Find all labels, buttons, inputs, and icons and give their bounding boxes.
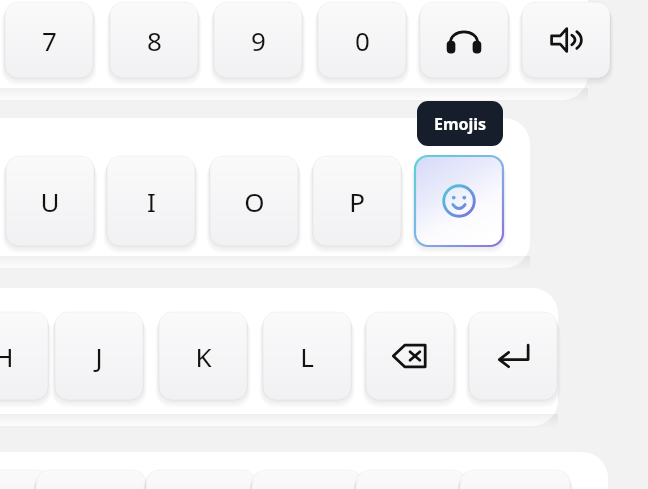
staticText: O: [244, 184, 265, 219]
button[interactable]: I: [107, 156, 195, 246]
button[interactable]: 9: [214, 2, 302, 78]
staticText: 7: [42, 23, 57, 58]
button[interactable]: P: [313, 156, 401, 246]
staticText: H: [0, 339, 14, 374]
button[interactable]: K: [159, 312, 247, 400]
button[interactable]: 8: [110, 2, 198, 78]
staticText: P: [349, 184, 365, 219]
staticText: J: [95, 339, 103, 374]
staticText: 8: [147, 23, 162, 58]
button[interactable]: O: [210, 156, 298, 246]
button[interactable]: H: [0, 312, 48, 400]
button[interactable]: 7: [5, 2, 93, 78]
button[interactable]: Backspace: [366, 312, 454, 400]
staticText: Emojis: [434, 113, 487, 135]
button[interactable]: Volume: [522, 2, 610, 78]
staticText: 9: [251, 23, 266, 58]
staticText: I: [147, 184, 156, 219]
button[interactable]: 0: [318, 2, 406, 78]
button[interactable]: L: [263, 312, 351, 400]
button[interactable]: Enter: [469, 312, 557, 400]
button[interactable]: Emojis: [415, 156, 503, 246]
staticText: U: [40, 184, 60, 219]
staticText: 0: [355, 23, 370, 58]
button[interactable]: Headphones: [420, 2, 508, 78]
button[interactable]: U: [6, 156, 94, 246]
staticText: K: [195, 339, 212, 374]
staticText: L: [300, 339, 314, 374]
button[interactable]: J: [55, 312, 143, 400]
